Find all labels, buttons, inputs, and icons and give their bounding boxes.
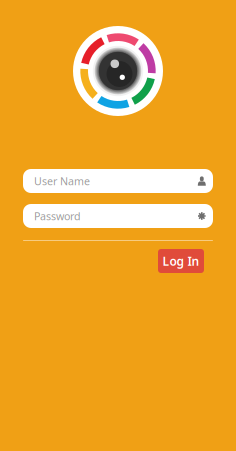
button[interactable]: Log In [158, 249, 204, 273]
staticText: Log In [162, 253, 199, 269]
staticText: User Name [34, 174, 90, 188]
button[interactable]: User Name [23, 169, 213, 193]
button[interactable]: Password [23, 204, 213, 228]
staticText: Password [34, 209, 81, 223]
